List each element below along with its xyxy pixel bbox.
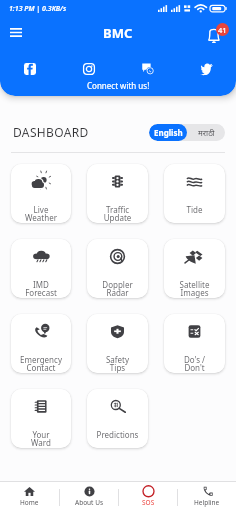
button[interactable]: Live Weather [11,164,71,223]
staticText: BMC [103,24,133,40]
button[interactable]: मराठी [187,124,225,141]
button[interactable]: About Us [60,482,118,512]
staticText: Live Weather [11,204,71,223]
button[interactable]: Doppler Radar [87,239,148,298]
staticText: IMD Forecast [11,279,71,298]
staticText: Do's / Don't [164,354,225,373]
staticText: Helpline [194,498,220,507]
button[interactable]: Home [0,482,59,512]
button[interactable]: Notifications [203,22,229,48]
button[interactable]: Do's / Don't [164,314,225,373]
staticText: English [154,127,183,138]
button[interactable]: Your Ward [11,389,71,448]
button[interactable]: Emergency Contact [11,314,71,373]
button[interactable]: Satellite Images [164,239,225,298]
button[interactable]: Predictions [87,389,148,448]
button[interactable]: Helpline [178,482,236,512]
staticText: Predictions [87,429,148,440]
staticText: Connect with us! [87,80,150,91]
staticText: मराठी [198,127,215,138]
button[interactable]: Instagram [59,58,118,79]
staticText: Home [20,498,39,507]
staticText: Traffic Update [87,204,148,223]
button[interactable]: Traffic Update [87,164,148,223]
button[interactable]: English [149,124,187,141]
button[interactable]: Menu [6,22,26,42]
staticText: DASHBOARD [13,124,89,140]
button[interactable]: Facebook [0,58,59,79]
staticText: Your Ward [11,429,71,448]
staticText: About Us [75,498,104,507]
staticText: Tide [164,204,225,215]
button[interactable]: WhatsApp [118,58,177,79]
staticText: Doppler Radar [87,279,148,298]
button[interactable]: Safety Tips [87,314,148,373]
staticText: Satellite Images [164,279,225,298]
button[interactable]: Tide [164,164,225,223]
button[interactable]: IMD Forecast [11,239,71,298]
button[interactable]: SOS [119,482,177,512]
button[interactable]: Twitter [177,58,236,79]
staticText: 41 [218,25,227,35]
staticText: Emergency Contact [11,354,71,373]
staticText: Safety Tips [87,354,148,373]
staticText: 1:13 PM | 0.3KB/s [9,4,67,14]
staticText: SOS [142,498,155,507]
